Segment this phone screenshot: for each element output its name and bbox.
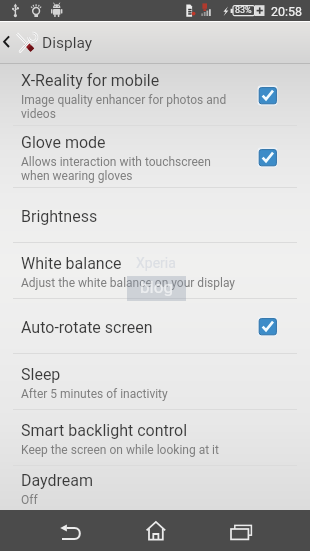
staticText: White balance [21, 254, 122, 273]
button[interactable]: Glove mode [0, 126, 310, 188]
button[interactable]: X-Reality for mobile [0, 64, 310, 126]
staticText: Display [42, 34, 93, 52]
staticText: Auto-rotate screen [21, 318, 153, 337]
button[interactable]: Back [28, 510, 113, 551]
button[interactable]: Auto-rotate screen [0, 299, 310, 354]
staticText: Adjust the white balance on your display [21, 276, 236, 290]
staticText: blog [140, 277, 173, 297]
staticText: After 5 minutes of inactivity [21, 387, 168, 401]
button[interactable]: Toggle Glove mode [257, 147, 278, 168]
button[interactable]: Brightness [0, 188, 310, 243]
staticText: Xperia [136, 255, 176, 271]
button[interactable]: Smart backlight control [0, 410, 310, 466]
button[interactable]: Sleep [0, 354, 310, 410]
staticText: 20:58 [271, 4, 303, 19]
staticText: Smart backlight control [21, 421, 188, 440]
staticText: 83% [235, 5, 252, 16]
staticText: Glove mode [21, 133, 106, 152]
button[interactable]: Display [0, 22, 310, 64]
staticText: Off [21, 493, 38, 507]
staticText: Keep the screen on while looking at it [21, 443, 219, 457]
button[interactable]: Home [113, 510, 198, 551]
button[interactable]: White balance [0, 243, 310, 299]
staticText: Brightness [21, 207, 98, 226]
button[interactable]: Daydream [0, 466, 310, 510]
staticText: Allows interaction with touchscreen when… [21, 155, 239, 183]
button[interactable]: Toggle X-Reality for mobile [257, 85, 278, 106]
button[interactable]: Recent apps [198, 510, 283, 551]
staticText: Sleep [21, 365, 61, 384]
button[interactable]: Toggle Auto-rotate screen [257, 316, 278, 337]
staticText: Daydream [21, 471, 94, 490]
staticText: Image quality enhancer for photos and vi… [21, 93, 239, 121]
staticText: X-Reality for mobile [21, 71, 160, 90]
